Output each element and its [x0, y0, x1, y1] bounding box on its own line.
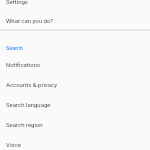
- staticText: Voice: [6, 141, 21, 148]
- button[interactable]: Search region: [0, 114, 150, 134]
- button[interactable]: Search language: [0, 94, 150, 114]
- staticText: Notifications: [6, 61, 41, 68]
- button[interactable]: Notifications: [0, 54, 150, 74]
- staticText: What can you do?: [6, 17, 54, 24]
- button[interactable]: What can you do?: [0, 10, 150, 30]
- staticText: Settings: [6, 0, 28, 5]
- button[interactable]: Settings: [0, 0, 150, 11]
- button[interactable]: Voice: [0, 134, 150, 150]
- staticText: Accounts & privacy: [6, 81, 57, 88]
- staticText: Search language: [6, 101, 51, 108]
- staticText: Search region: [6, 121, 43, 128]
- staticText: Search: [6, 45, 23, 51]
- button[interactable]: Accounts & privacy: [0, 74, 150, 94]
